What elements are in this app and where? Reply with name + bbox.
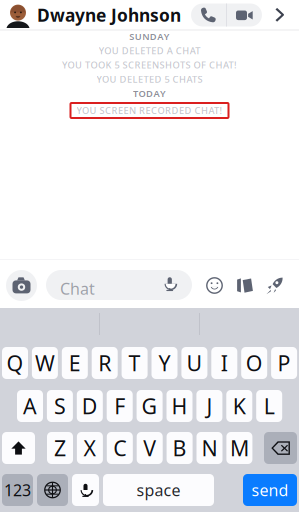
staticText: K [233, 392, 246, 420]
staticText: A [23, 392, 37, 420]
staticText: Z [54, 434, 66, 462]
button[interactable]: Dwayne Johnson [0, 0, 181, 29]
button[interactable]: K [226, 390, 252, 422]
button[interactable]: T [122, 347, 148, 379]
staticText: YOU DELETED 5 CHATS [96, 73, 202, 85]
button[interactable]: A [17, 390, 43, 422]
button[interactable]: Chat [46, 270, 192, 300]
button[interactable]: space [103, 474, 214, 506]
staticText: R [98, 349, 111, 377]
staticText: W [35, 349, 55, 377]
button[interactable]: M [226, 432, 252, 464]
staticText: F [114, 392, 125, 420]
button[interactable]: X [77, 432, 103, 464]
staticText: P [278, 349, 291, 377]
button[interactable]: Camera [6, 270, 37, 301]
staticText: G [142, 392, 158, 420]
staticText: S [54, 392, 66, 420]
staticText: YOU SCREEN RECORDED CHAT! [76, 104, 222, 117]
button[interactable]: P [271, 347, 297, 379]
button[interactable]: Z [47, 432, 73, 464]
button[interactable]: D [77, 390, 103, 422]
button[interactable]: Voice call [191, 3, 226, 26]
staticText: B [173, 434, 187, 462]
button[interactable]: Open profile [265, 0, 295, 29]
button[interactable]: H [166, 390, 192, 422]
button[interactable]: Shift [2, 432, 35, 464]
staticText: X [83, 434, 96, 462]
button[interactable]: R [92, 347, 118, 379]
button[interactable]: I [211, 347, 237, 379]
button[interactable]: E [62, 347, 88, 379]
staticText: C [113, 434, 126, 462]
button[interactable]: L [256, 390, 282, 422]
staticText: space [136, 479, 180, 501]
staticText: SUNDAY [129, 30, 170, 43]
button[interactable]: G [137, 390, 163, 422]
button[interactable]: Video call [227, 3, 262, 26]
button[interactable]: W [32, 347, 58, 379]
button[interactable]: Dictate [72, 474, 99, 506]
button[interactable]: O [241, 347, 267, 379]
button[interactable]: U [181, 347, 207, 379]
staticText: YOU TOOK 5 SCREENSHOTS OF CHAT! [62, 59, 237, 71]
staticText: Y [158, 349, 170, 377]
staticText: V [143, 434, 156, 462]
staticText: YOU DELETED A CHAT [99, 44, 200, 57]
button[interactable]: Delete [264, 432, 297, 464]
staticText: send [251, 479, 288, 501]
staticText: L [264, 392, 275, 420]
button[interactable]: N [196, 432, 222, 464]
staticText: D [82, 392, 98, 420]
staticText: 123 [4, 479, 31, 501]
staticText: E [69, 349, 81, 377]
staticText: O [246, 349, 263, 377]
staticText: TODAY [133, 87, 166, 99]
staticText: J [206, 392, 212, 420]
staticText: M [230, 434, 249, 462]
button[interactable]: Rocket [266, 277, 283, 294]
button[interactable]: S [47, 390, 73, 422]
staticText: Chat [60, 278, 95, 299]
button[interactable]: Next keyboard [37, 474, 68, 506]
staticText: H [171, 392, 187, 420]
button[interactable]: Emoji [206, 277, 223, 294]
button[interactable]: B [167, 432, 193, 464]
button[interactable]: J [196, 390, 222, 422]
staticText: I [221, 349, 228, 377]
button[interactable]: Q [2, 347, 28, 379]
button[interactable]: C [107, 432, 133, 464]
staticText: Q [6, 349, 23, 377]
button[interactable]: Y [151, 347, 177, 379]
button[interactable]: F [107, 390, 133, 422]
button[interactable]: 123 [2, 474, 33, 506]
staticText: T [129, 349, 141, 377]
button[interactable]: Stickers [235, 277, 254, 294]
staticText: U [186, 349, 202, 377]
staticText: Dwayne Johnson [37, 3, 181, 26]
button[interactable]: send [243, 474, 297, 506]
staticText: N [201, 434, 217, 462]
button[interactable]: V [137, 432, 163, 464]
